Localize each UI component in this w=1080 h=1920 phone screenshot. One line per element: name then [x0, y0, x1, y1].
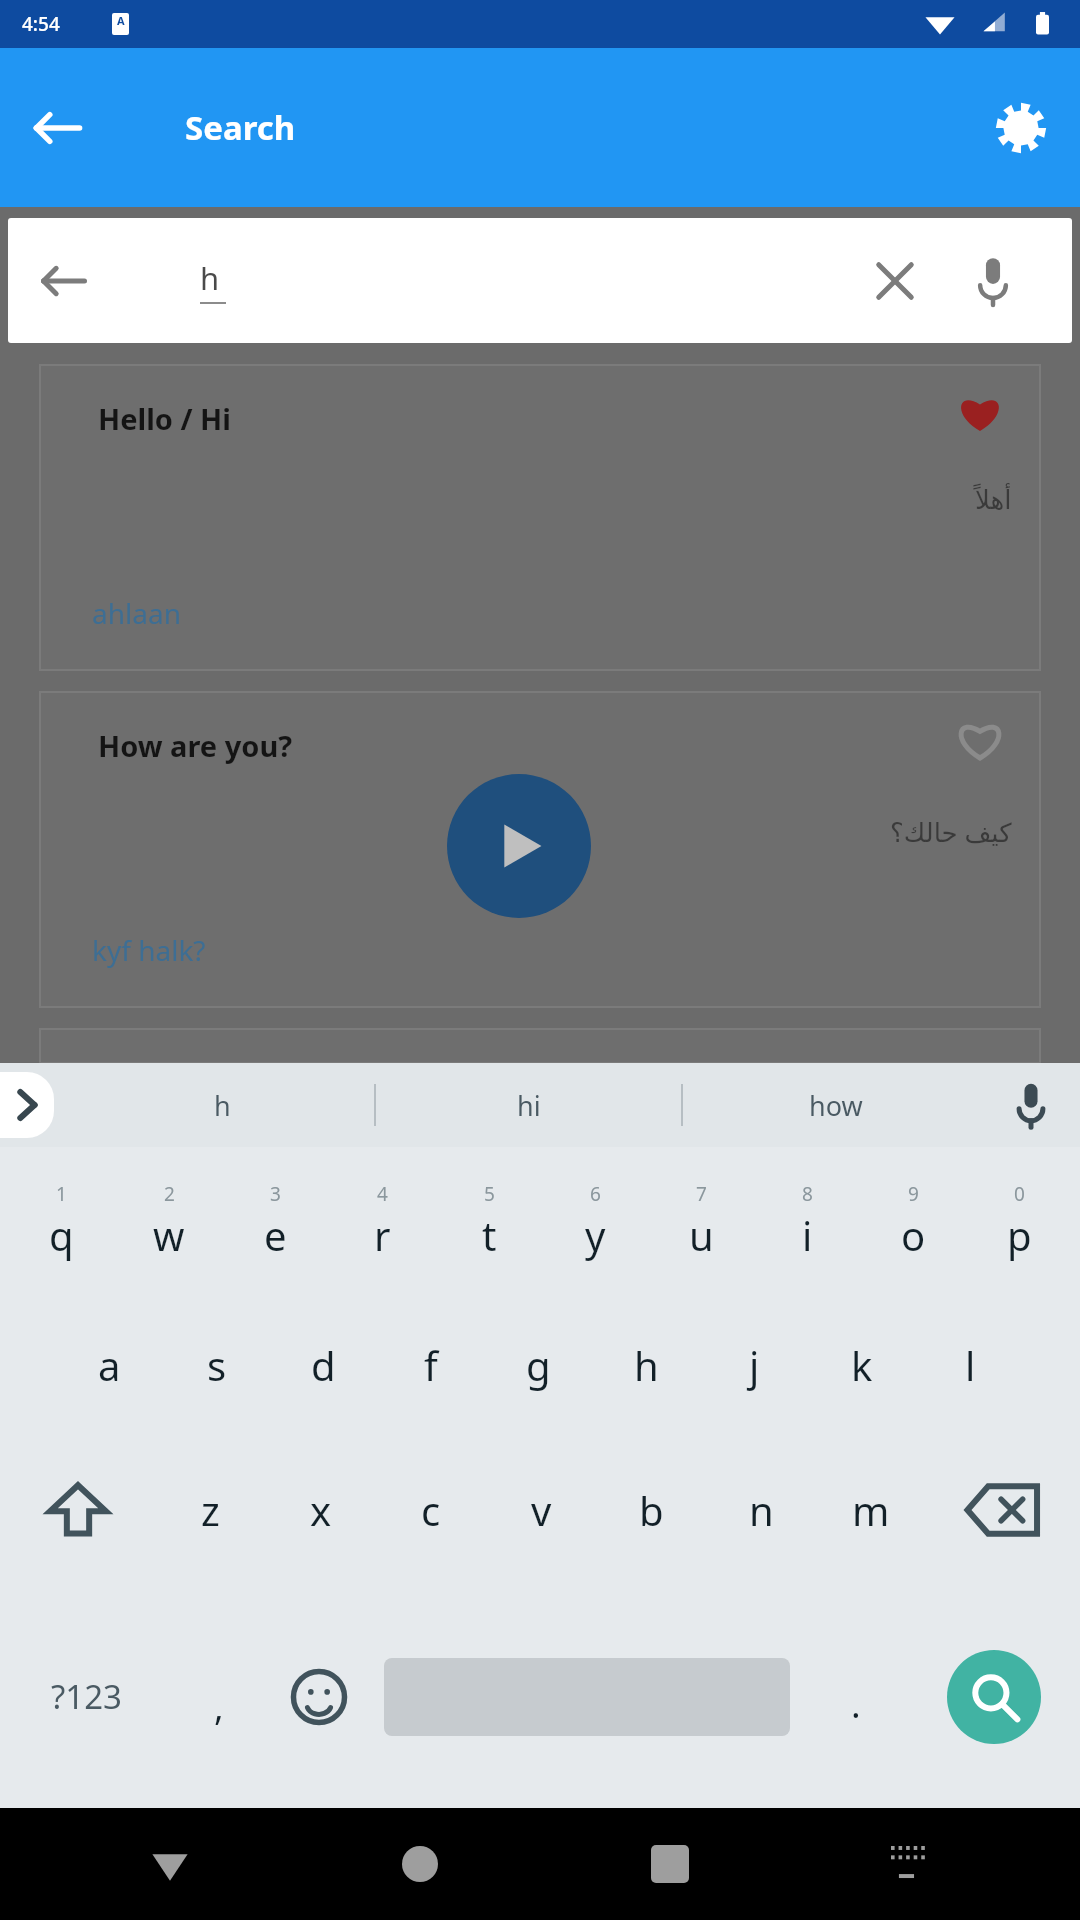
staticText: h: [214, 1087, 231, 1124]
button[interactable]: k: [808, 1295, 916, 1435]
button[interactable]: How are you?: [40, 692, 1040, 1007]
staticText: how: [809, 1087, 863, 1124]
button[interactable]: 6: [542, 1147, 648, 1295]
button[interactable]: j: [700, 1295, 808, 1435]
button[interactable]: ?123: [0, 1585, 172, 1808]
button[interactable]: Clear query: [858, 244, 932, 318]
staticText: hi: [517, 1087, 541, 1124]
staticText: r: [374, 1208, 391, 1262]
staticText: a: [98, 1338, 121, 1392]
button[interactable]: Switch keyboard: [840, 1808, 990, 1920]
button[interactable]: Space: [371, 1585, 803, 1808]
staticText: h: [634, 1338, 659, 1392]
staticText: A: [117, 13, 125, 28]
button[interactable]: 8: [754, 1147, 860, 1295]
button[interactable]: Back: [26, 243, 102, 319]
button[interactable]: 4: [329, 1147, 436, 1295]
staticText: n: [749, 1483, 774, 1537]
button[interactable]: Settings: [984, 91, 1058, 165]
button[interactable]: Backspace: [926, 1435, 1080, 1585]
button[interactable]: d: [270, 1295, 377, 1435]
staticText: z: [201, 1483, 220, 1537]
staticText: s: [207, 1338, 227, 1392]
button[interactable]: ,: [172, 1585, 266, 1808]
staticText: kyf halk?: [92, 931, 206, 969]
button[interactable]: v: [486, 1435, 596, 1585]
staticText: t: [482, 1208, 497, 1262]
staticText: ?123: [51, 1674, 122, 1719]
staticText: b: [639, 1483, 664, 1537]
staticText: w: [153, 1208, 185, 1262]
staticText: 7: [696, 1181, 707, 1207]
staticText: ahlaan: [92, 594, 181, 632]
staticText: c: [421, 1483, 441, 1537]
button[interactable]: Shift: [0, 1435, 155, 1585]
staticText: أهلاً: [975, 485, 1012, 515]
button[interactable]: Search: [947, 1650, 1041, 1744]
button[interactable]: .: [803, 1585, 908, 1808]
button[interactable]: h: [592, 1295, 700, 1435]
button[interactable]: b: [596, 1435, 706, 1585]
button[interactable]: Voice search: [956, 244, 1030, 318]
button[interactable]: 1: [8, 1147, 115, 1295]
staticText: u: [689, 1208, 714, 1262]
staticText: j: [749, 1338, 760, 1392]
button[interactable]: h: [70, 1063, 374, 1147]
button[interactable]: Back: [8, 218, 1072, 343]
button[interactable]: x: [266, 1435, 376, 1585]
staticText: 2: [164, 1181, 175, 1207]
button[interactable]: c: [376, 1435, 486, 1585]
staticText: 3: [270, 1181, 281, 1207]
staticText: l: [965, 1338, 976, 1392]
button[interactable]: 7: [648, 1147, 754, 1295]
button[interactable]: z: [155, 1435, 266, 1585]
button[interactable]: n: [706, 1435, 816, 1585]
staticText: 1: [56, 1181, 67, 1207]
button[interactable]: Emoji: [266, 1585, 371, 1808]
staticText: Hello / Hi: [98, 399, 231, 438]
button[interactable]: s: [163, 1295, 270, 1435]
button[interactable]: hi: [376, 1063, 681, 1147]
button[interactable]: 2: [115, 1147, 222, 1295]
button[interactable]: a: [56, 1295, 163, 1435]
staticText: 5: [484, 1181, 495, 1207]
button[interactable]: 5: [436, 1147, 542, 1295]
staticText: 4:54: [22, 11, 60, 37]
staticText: p: [1007, 1208, 1032, 1262]
button[interactable]: Remove from favourites: [942, 375, 1018, 451]
button[interactable]: f: [377, 1295, 484, 1435]
staticText: 9: [908, 1181, 919, 1207]
staticText: .: [851, 1680, 861, 1729]
staticText: 8: [802, 1181, 813, 1207]
button[interactable]: l: [916, 1295, 1024, 1435]
button[interactable]: 3: [222, 1147, 329, 1295]
staticText: k: [851, 1338, 873, 1392]
button[interactable]: Play pronunciation: [447, 774, 591, 918]
staticText: i: [802, 1208, 813, 1262]
staticText: q: [49, 1208, 74, 1262]
button[interactable]: 9: [860, 1147, 966, 1295]
button[interactable]: Recents: [590, 1808, 750, 1920]
staticText: 6: [590, 1181, 601, 1207]
button[interactable]: Hello / Hi: [40, 365, 1040, 670]
button[interactable]: Home: [340, 1808, 500, 1920]
staticText: How are you?: [98, 726, 293, 765]
staticText: o: [901, 1208, 926, 1262]
staticText: m: [852, 1483, 890, 1537]
staticText: h: [200, 257, 220, 299]
staticText: f: [424, 1338, 438, 1392]
staticText: e: [264, 1208, 287, 1262]
button[interactable]: Add to favourites: [942, 702, 1018, 778]
staticText: 4: [377, 1181, 388, 1207]
button[interactable]: Navigate up: [22, 92, 94, 164]
staticText: Search: [185, 105, 296, 150]
button[interactable]: g: [484, 1295, 592, 1435]
staticText: v: [531, 1483, 552, 1537]
button[interactable]: Back: [90, 1808, 250, 1920]
button[interactable]: how: [683, 1063, 988, 1147]
button[interactable]: m: [816, 1435, 926, 1585]
button[interactable]: 0: [966, 1147, 1072, 1295]
button[interactable]: More options: [0, 1072, 54, 1138]
button[interactable]: Voice input: [1000, 1074, 1062, 1136]
staticText: g: [526, 1338, 551, 1392]
